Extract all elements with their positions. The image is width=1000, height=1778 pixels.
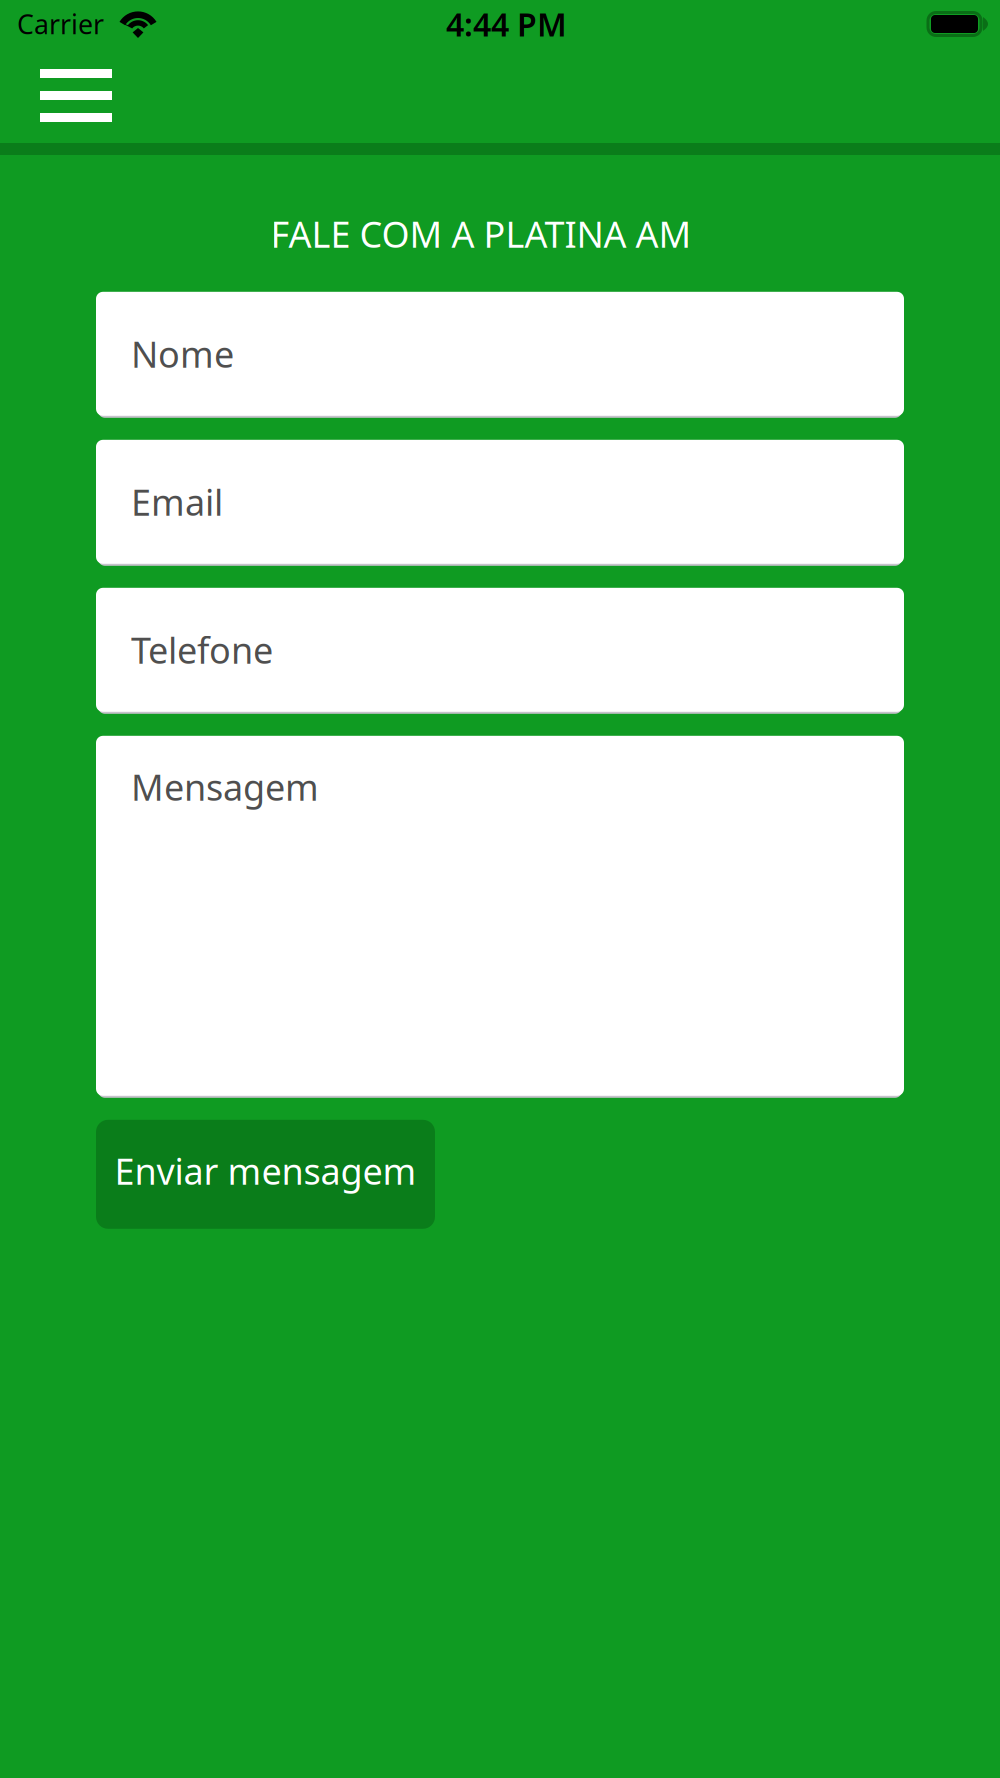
button[interactable]: Nome: [96, 292, 904, 416]
staticText: Nome: [131, 330, 234, 378]
staticText: Enviar mensagem: [114, 1147, 416, 1195]
staticText: Telefone: [131, 626, 273, 674]
staticText: FALE COM A PLATINA AM: [270, 210, 691, 258]
button[interactable]: Menu: [0, 48, 136, 143]
staticText: 4:44 PM: [446, 3, 567, 45]
button[interactable]: Mensagem: [96, 736, 904, 1096]
staticText: Mensagem: [131, 763, 319, 811]
staticText: Email: [131, 478, 223, 526]
button[interactable]: Enviar mensagem: [96, 1120, 435, 1229]
button[interactable]: Email: [96, 440, 904, 564]
staticText: Carrier: [17, 6, 104, 42]
button[interactable]: Telefone: [96, 588, 904, 712]
